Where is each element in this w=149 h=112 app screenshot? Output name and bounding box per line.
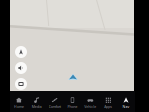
staticText: Media bbox=[32, 104, 42, 109]
staticText: Vehicle bbox=[84, 104, 96, 109]
button[interactable]: Media bbox=[28, 91, 46, 112]
staticText: Apps bbox=[104, 104, 112, 109]
button[interactable]: Route list bbox=[15, 78, 27, 90]
button[interactable]: Phone bbox=[64, 91, 81, 112]
button[interactable]: Mute bbox=[15, 62, 27, 74]
button[interactable]: Home bbox=[10, 91, 28, 112]
staticText: Home bbox=[14, 104, 24, 109]
button[interactable]: Apps bbox=[99, 91, 117, 112]
staticText: Comfort bbox=[49, 104, 61, 109]
staticText: Nav bbox=[122, 104, 129, 109]
button[interactable]: Comfort bbox=[46, 91, 64, 112]
button[interactable]: Vehicle bbox=[81, 91, 99, 112]
button[interactable]: Compass bbox=[15, 46, 27, 58]
button[interactable]: Nav bbox=[117, 91, 135, 112]
staticText: Phone bbox=[67, 104, 77, 109]
